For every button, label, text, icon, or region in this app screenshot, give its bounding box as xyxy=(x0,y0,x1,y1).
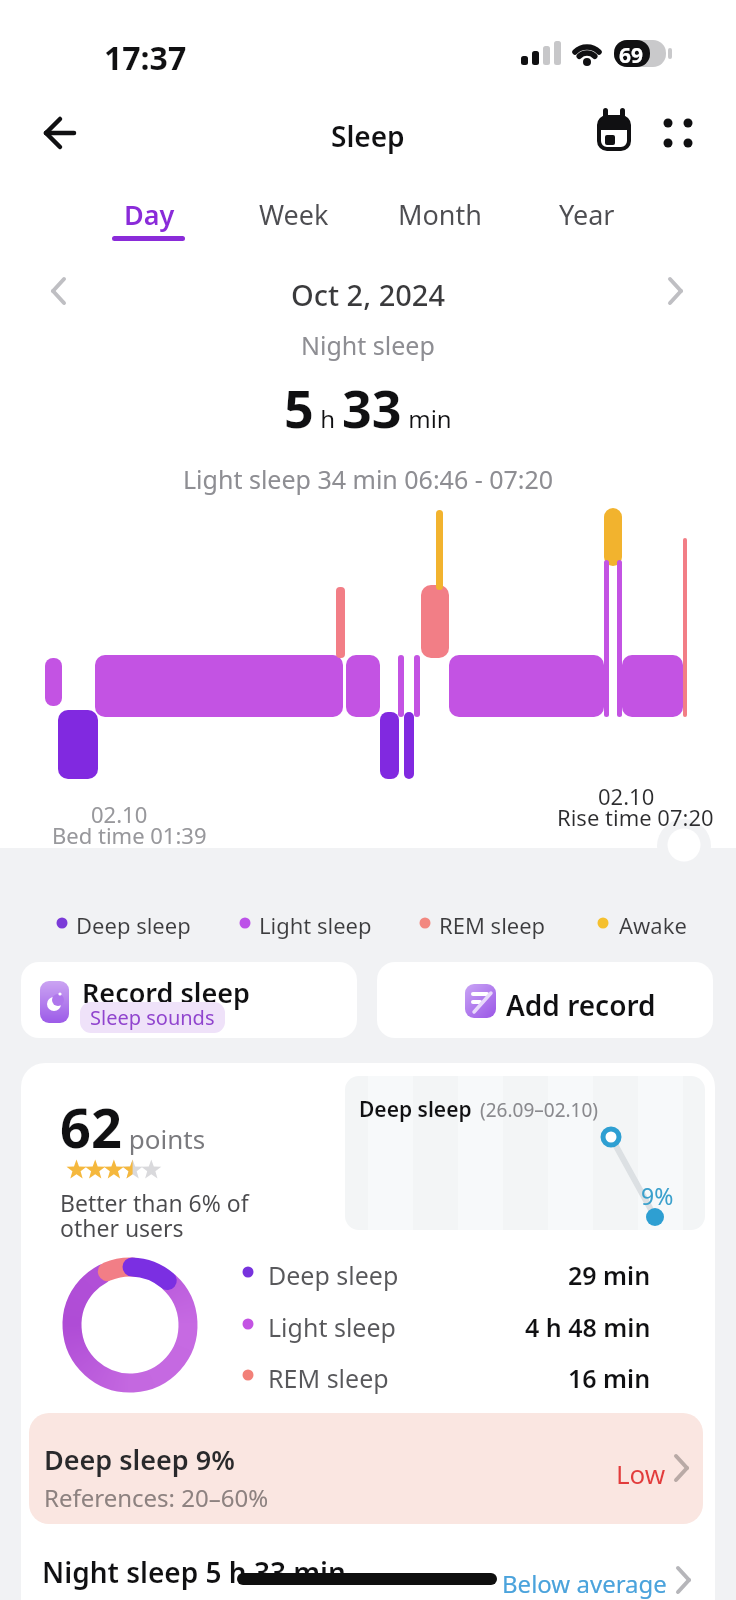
button[interactable]: Month xyxy=(392,196,488,240)
staticText: Month xyxy=(398,196,482,233)
button[interactable] xyxy=(29,1413,703,1524)
button[interactable]: Year xyxy=(545,196,629,240)
staticText: Deep sleep xyxy=(76,910,191,940)
staticText: Deep sleep 9% xyxy=(44,1441,235,1478)
staticText: other users xyxy=(60,1212,184,1243)
button[interactable] xyxy=(21,1063,715,1600)
staticText: 9% xyxy=(641,1180,674,1211)
button[interactable] xyxy=(29,1545,703,1600)
staticText: 69 xyxy=(619,41,644,70)
staticText: 29 min xyxy=(568,1258,651,1292)
staticText: 62 xyxy=(60,1090,122,1164)
staticText: 17:37 xyxy=(104,36,187,80)
staticText: 5 xyxy=(284,372,314,443)
staticText: 4 h 48 min xyxy=(525,1310,651,1344)
staticText: (26.09–02.10) xyxy=(480,1097,599,1123)
staticText: Bed time 01:39 xyxy=(52,820,207,850)
staticText: Below average xyxy=(502,1567,667,1600)
staticText: References: 20–60% xyxy=(44,1481,269,1514)
staticText: points xyxy=(122,1121,206,1156)
staticText: 16 min xyxy=(568,1361,651,1395)
staticText: Oct 2, 2024 xyxy=(291,275,446,314)
staticText: min xyxy=(402,402,452,435)
staticText: REM sleep xyxy=(439,910,546,940)
button[interactable]: Day xyxy=(112,196,186,246)
staticText: Light sleep xyxy=(259,910,372,940)
button[interactable] xyxy=(21,962,357,1038)
staticText: Week xyxy=(259,196,329,233)
staticText: Sleep xyxy=(331,117,405,155)
staticText: Record sleep xyxy=(82,974,250,1011)
staticText: Deep sleep xyxy=(268,1258,399,1292)
staticText: Add record xyxy=(506,986,656,1024)
button[interactable]: Week xyxy=(252,196,336,240)
staticText: Rise time 07:20 xyxy=(557,802,714,832)
staticText: Light sleep 34 min 06:46 - 07:20 xyxy=(183,462,554,496)
staticText: Night sleep 5 h 33 min xyxy=(42,1553,346,1591)
staticText: Sleep sounds xyxy=(90,1004,215,1031)
staticText: Day xyxy=(124,196,175,233)
staticText: Year xyxy=(559,196,615,233)
staticText: Awake xyxy=(619,910,687,940)
staticText: 02.10 xyxy=(91,799,148,829)
staticText: 02.10 xyxy=(598,781,655,811)
button[interactable] xyxy=(377,962,713,1038)
staticText: Low xyxy=(616,1456,666,1491)
staticText: REM sleep xyxy=(268,1361,389,1395)
staticText: Better than 6% of xyxy=(60,1187,249,1218)
staticText: Light sleep xyxy=(268,1310,396,1344)
staticText: Night sleep xyxy=(301,328,435,362)
staticText: 33 xyxy=(342,372,402,443)
staticText: Deep sleep xyxy=(359,1095,472,1124)
staticText: h xyxy=(314,402,342,435)
